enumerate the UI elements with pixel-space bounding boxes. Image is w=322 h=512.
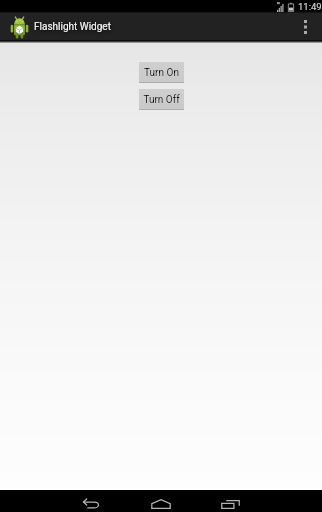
button[interactable]: Turn Off [139,89,184,110]
staticText: 11:49 [298,1,322,12]
button[interactable]: Home [131,490,191,512]
button[interactable]: Turn On [139,62,184,83]
button[interactable]: Recent apps [200,490,260,512]
staticText: Turn Off [143,94,180,106]
button[interactable]: More options [292,13,318,40]
button[interactable]: Back [61,490,121,512]
staticText: Flashlight Widget [34,21,111,33]
staticText: Turn On [144,67,179,79]
